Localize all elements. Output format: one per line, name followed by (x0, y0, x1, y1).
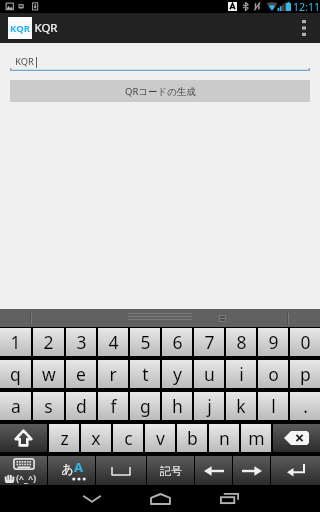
button[interactable]: s (33, 392, 64, 420)
staticText: KQR (10, 22, 30, 35)
staticText: . (303, 394, 308, 418)
button[interactable]: QRコードの生成 (10, 80, 310, 102)
button[interactable]: t (130, 360, 160, 388)
button[interactable]: n (209, 424, 239, 452)
button[interactable]: 0 (290, 328, 320, 356)
staticText: i (239, 362, 244, 386)
staticText: v (156, 426, 165, 450)
button[interactable]: r (98, 360, 128, 388)
button[interactable]: Hide keyboard (68, 485, 116, 512)
button[interactable]: c (113, 424, 143, 452)
staticText: g (140, 394, 151, 418)
staticText: 5 (140, 330, 151, 354)
staticText: x (91, 426, 101, 450)
button[interactable]: p (290, 360, 320, 388)
button[interactable]: . (290, 392, 320, 420)
button[interactable]: 6 (162, 328, 192, 356)
button[interactable]: w (33, 360, 64, 388)
button[interactable]: k (226, 392, 256, 420)
button[interactable]: e (66, 360, 96, 388)
button[interactable]: u (194, 360, 224, 388)
button[interactable]: j (194, 392, 224, 420)
staticText: KQR (34, 20, 58, 36)
staticText: 1 (10, 330, 21, 354)
staticText: o (268, 362, 279, 386)
staticText: a (11, 394, 21, 418)
staticText: r (109, 362, 117, 386)
staticText: c (124, 426, 133, 450)
button[interactable]: 8 (226, 328, 256, 356)
staticText: z (60, 426, 69, 450)
button[interactable]: Switch keyboard (0, 456, 47, 485)
button[interactable]: Recents (205, 485, 253, 512)
staticText: h (172, 394, 183, 418)
staticText: b (187, 426, 198, 450)
staticText: A (74, 458, 83, 476)
button[interactable]: i (226, 360, 256, 388)
staticText: j (207, 394, 212, 418)
button[interactable]: h (162, 392, 192, 420)
button[interactable]: x (81, 424, 111, 452)
staticText: u (204, 362, 215, 386)
button[interactable]: Shift (0, 424, 47, 452)
button[interactable]: g (130, 392, 160, 420)
button[interactable]: l (258, 392, 288, 420)
button[interactable]: o (258, 360, 288, 388)
button[interactable]: Enter (271, 456, 320, 485)
staticText: (^_^) (16, 472, 36, 484)
staticText: 8 (236, 330, 247, 354)
staticText: 12:11 (293, 0, 320, 13)
button[interactable]: y (162, 360, 192, 388)
button[interactable]: a (0, 392, 31, 420)
staticText: QRコードの生成 (125, 85, 196, 98)
button[interactable]: Home (136, 485, 184, 512)
button[interactable]: q (0, 360, 31, 388)
staticText: KQR (15, 55, 34, 68)
button[interactable]: Left (195, 456, 232, 485)
staticText: w (42, 362, 56, 386)
button[interactable]: 4 (98, 328, 128, 356)
staticText: 0 (300, 330, 311, 354)
button[interactable]: Space (96, 456, 146, 485)
button[interactable]: m (241, 424, 271, 452)
button[interactable]: KQR (10, 51, 310, 71)
button[interactable]: Symbols (147, 456, 194, 485)
button[interactable]: 3 (66, 328, 96, 356)
staticText: 記号 (160, 464, 182, 478)
staticText: f (110, 394, 117, 418)
staticText: 9 (268, 330, 279, 354)
staticText: あ (61, 461, 74, 476)
button[interactable]: f (98, 392, 128, 420)
staticText: 3 (76, 330, 87, 354)
button[interactable]: 7 (194, 328, 224, 356)
button[interactable]: v (145, 424, 175, 452)
button[interactable]: Right (233, 456, 270, 485)
button[interactable]: 9 (258, 328, 288, 356)
button[interactable]: Input mode (48, 456, 95, 485)
staticText: 7 (204, 330, 215, 354)
staticText: n (219, 426, 230, 450)
staticText: d (76, 394, 87, 418)
button[interactable]: z (49, 424, 79, 452)
staticText: l (271, 394, 276, 418)
button[interactable]: b (177, 424, 207, 452)
button[interactable]: d (66, 392, 96, 420)
staticText: p (300, 362, 311, 386)
button[interactable]: Backspace (273, 424, 320, 452)
staticText: y (173, 362, 182, 386)
button[interactable]: 5 (130, 328, 160, 356)
staticText: m (248, 426, 265, 450)
staticText: 4 (108, 330, 119, 354)
staticText: q (10, 362, 21, 386)
staticText: s (44, 394, 53, 418)
staticText: t (142, 362, 149, 386)
staticText: e (76, 362, 86, 386)
button[interactable]: 1 (0, 328, 31, 356)
button[interactable]: 2 (33, 328, 64, 356)
staticText: k (236, 394, 246, 418)
staticText: 2 (43, 330, 54, 354)
staticText: 6 (172, 330, 183, 354)
button[interactable]: More options (288, 13, 320, 43)
